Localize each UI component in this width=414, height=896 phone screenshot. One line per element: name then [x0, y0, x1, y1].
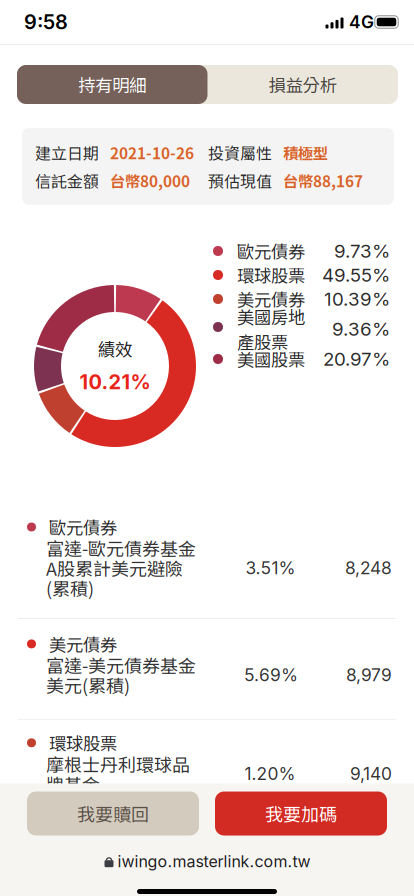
- staticText: 8,979: [346, 664, 392, 685]
- staticText: 積極型: [283, 141, 328, 164]
- staticText: 歐元債券: [49, 514, 117, 540]
- staticText: 牌基金: [46, 771, 100, 797]
- staticText: 台幣80,000: [110, 169, 190, 192]
- staticText: 建立日期: [35, 141, 99, 164]
- staticText: 2021-10-26: [110, 141, 194, 164]
- staticText: 9.36%: [332, 318, 390, 340]
- staticText: 預估現值: [208, 169, 272, 192]
- staticText: 美國房地 產股票: [237, 304, 305, 354]
- staticText: 1.20%: [244, 763, 295, 784]
- staticText: 9,140: [350, 763, 392, 784]
- staticText: 環球股票: [49, 730, 117, 755]
- button[interactable]: 我要加碼: [215, 791, 387, 835]
- staticText: 台幣88,167: [283, 169, 363, 192]
- staticText: 20.97%: [323, 348, 390, 370]
- staticText: 我要加碼: [265, 800, 337, 827]
- staticText: 我要贖回: [77, 800, 149, 827]
- staticText: 富達-美元債券基金: [46, 652, 196, 678]
- staticText: 投資屬性: [208, 141, 272, 164]
- button[interactable]: 歐元債券: [0, 501, 414, 618]
- staticText: 美元債券: [49, 631, 117, 656]
- staticText: 美國股票: [237, 346, 305, 372]
- button[interactable]: 持有明細: [17, 65, 207, 104]
- staticText: 持有明細: [78, 72, 146, 97]
- staticText: 10.39%: [324, 288, 390, 310]
- staticText: 8,248: [345, 557, 392, 578]
- staticText: 美元債券: [237, 286, 305, 312]
- staticText: 9.73%: [334, 240, 390, 262]
- staticText: iwingo.masterlink.com.tw: [117, 852, 310, 871]
- staticText: 10.21%: [79, 370, 150, 394]
- button[interactable]: 美元債券: [0, 619, 414, 719]
- staticText: 環球股票: [237, 262, 305, 288]
- staticText: (累積): [46, 575, 94, 601]
- staticText: 績效: [98, 336, 132, 361]
- staticText: 損益分析: [269, 72, 337, 97]
- staticText: 9:58: [24, 10, 68, 34]
- staticText: 美元(累積): [46, 672, 130, 698]
- staticText: 信託金額: [35, 169, 99, 192]
- staticText: 摩根士丹利環球品: [46, 751, 190, 777]
- staticText: 歐元債券: [237, 238, 305, 264]
- staticText: 富達-歐元債券基金: [46, 535, 196, 561]
- staticText: 49.55%: [322, 264, 390, 286]
- button[interactable]: 我要贖回: [27, 791, 199, 835]
- button[interactable]: 環球股票: [0, 720, 414, 820]
- staticText: 4G: [349, 11, 374, 32]
- staticText: 5.69%: [244, 664, 298, 685]
- staticText: 3.51%: [245, 557, 295, 578]
- button[interactable]: 損益分析: [207, 65, 398, 104]
- staticText: A股累計美元避險: [46, 555, 183, 581]
